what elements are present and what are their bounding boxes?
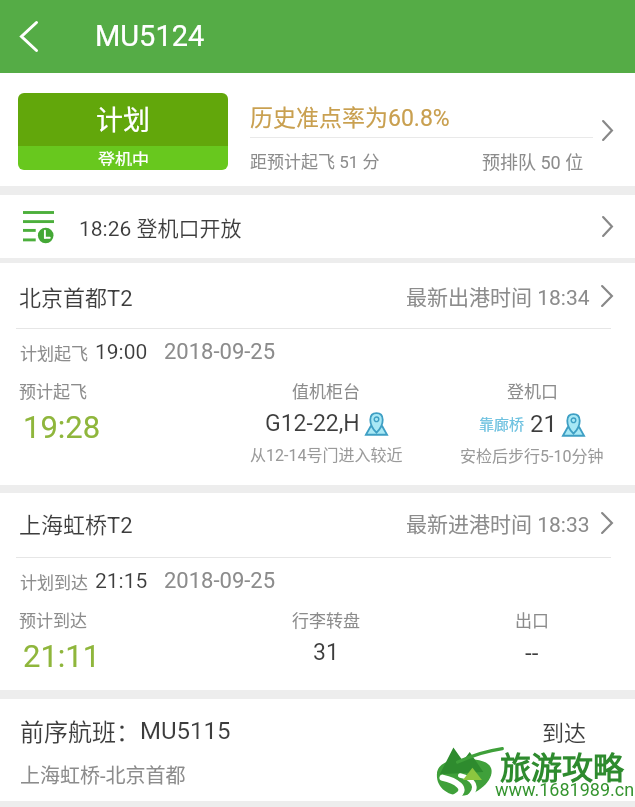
staticText: 计划 (96, 99, 150, 138)
staticText: 31 (313, 639, 339, 666)
staticText: 安检后步行5-10分钟 (460, 443, 604, 466)
staticText: -- (525, 639, 539, 667)
staticText: 18:26 登机口开放 (79, 212, 242, 242)
staticText: 19:00 (95, 340, 148, 365)
staticText: 计划起飞 (20, 340, 88, 365)
staticText: 从12-14号门进入较近 (250, 442, 403, 465)
staticText: 行李转盘 (292, 607, 360, 632)
staticText: 19:28 (23, 409, 101, 445)
staticText: www.1681989.cn (495, 779, 635, 800)
staticText: 预计起飞 (19, 378, 87, 403)
staticText: 2018-09-25 (164, 568, 276, 594)
staticText: 历史准点率为60.8% (250, 99, 450, 132)
staticText: G12-22,H (265, 410, 360, 437)
button[interactable]: Back (0, 0, 58, 73)
button[interactable]: 前序航班： (0, 699, 635, 789)
staticText: MU5115 (140, 717, 231, 745)
staticText: 值机柜台 (292, 378, 360, 403)
staticText: 最新进港时间 18:33 (406, 508, 590, 538)
staticText: 最新出港时间 18:34 (406, 281, 590, 311)
staticText: 登机中 (98, 146, 149, 166)
staticText: 前序航班： (20, 713, 140, 748)
staticText: 预排队 50 位 (482, 148, 584, 174)
staticText: 出口 (515, 607, 549, 632)
staticText: 预计到达 (19, 607, 87, 632)
staticText: MU5124 (95, 19, 205, 53)
staticText: 到达 (542, 715, 587, 747)
button[interactable]: 18:26 登机口开放 (0, 195, 635, 258)
staticText: 上海虹桥-北京首都 (20, 760, 186, 789)
button[interactable]: 历史准点率为60.8% (250, 99, 613, 174)
staticText: 旅游攻略 (500, 743, 624, 788)
staticText: 靠廊桥 (479, 413, 525, 435)
button[interactable]: 北京首都T2 (0, 280, 635, 312)
staticText: 计划到达 (20, 569, 88, 594)
staticText: 21:15 (95, 569, 148, 594)
staticText: 21 (530, 410, 557, 438)
button[interactable]: 上海虹桥T2 (0, 507, 635, 539)
button[interactable]: 计划 (18, 93, 228, 170)
staticText: 登机口 (507, 378, 558, 403)
staticText: 21:11 (23, 638, 101, 674)
staticText: 北京首都T2 (19, 280, 133, 312)
staticText: 距预计起飞 51 分 (250, 148, 380, 173)
staticText: 2018-09-25 (164, 339, 276, 365)
staticText: 上海虹桥T2 (19, 507, 133, 539)
